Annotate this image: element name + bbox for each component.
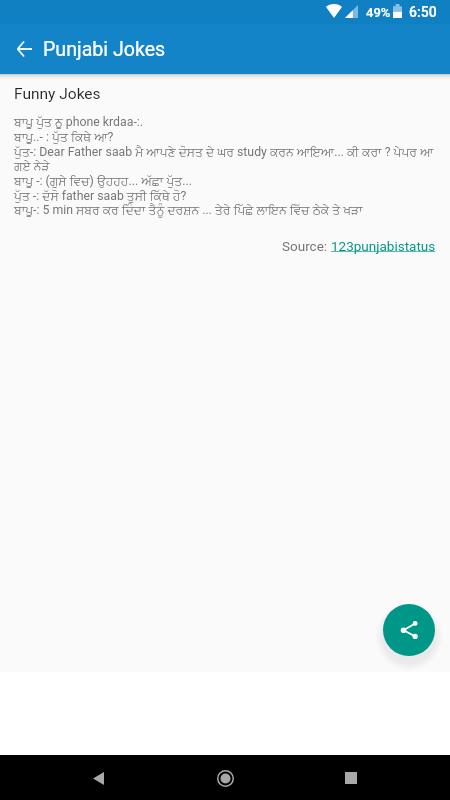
staticText: ਬਾਪੂ..- : ਪੁੱਤ ਕਿਥੇ ਆ? — [14, 130, 114, 144]
staticText: ਪੁੱਤ -: ਦੱਸੋ father saab ਤੁਸੀ ਕਿੱਥੇ ਹੋ? — [14, 189, 187, 203]
staticText: Source: — [282, 238, 331, 254]
button[interactable]: 123punjabistatus — [331, 238, 436, 254]
staticText: 123punjabistatus — [331, 238, 436, 254]
staticText: ਪੁੱਤ-: Dear Father saab ਮੈ ਆਪਣੇ ਦੋਸਤ ਦੇ … — [14, 145, 434, 159]
button[interactable]: Share — [383, 604, 435, 656]
staticText: 49% — [366, 5, 391, 20]
button[interactable]: Home — [206, 759, 244, 797]
button[interactable]: Back — [80, 760, 117, 797]
staticText: Funny Jokes — [14, 85, 101, 103]
staticText: 6:50 — [409, 4, 437, 20]
staticText: ਗਏ ਨੇੜੇ — [14, 159, 50, 173]
button[interactable]: Recent apps — [332, 759, 370, 797]
staticText: ਬਾਪੂ ਪੁੱਤ ਨੂ phone krdaa-:. — [14, 115, 144, 129]
button[interactable]: Navigate up — [0, 25, 48, 73]
staticText: Punjabi Jokes — [43, 38, 166, 61]
staticText: ਬਾਪੂ-: 5 min ਸਬਰ ਕਰ ਦਿੰਦਾ ਤੈਨੂੰ ਦਰਸ਼ਨ ..… — [14, 203, 363, 217]
staticText: ਬਾਪੂ -: (ਗੁਸੇ ਵਿਚ) ਉਹਹਹ... ਅੱਛਾ ਪੁੱਤ... — [14, 174, 192, 188]
